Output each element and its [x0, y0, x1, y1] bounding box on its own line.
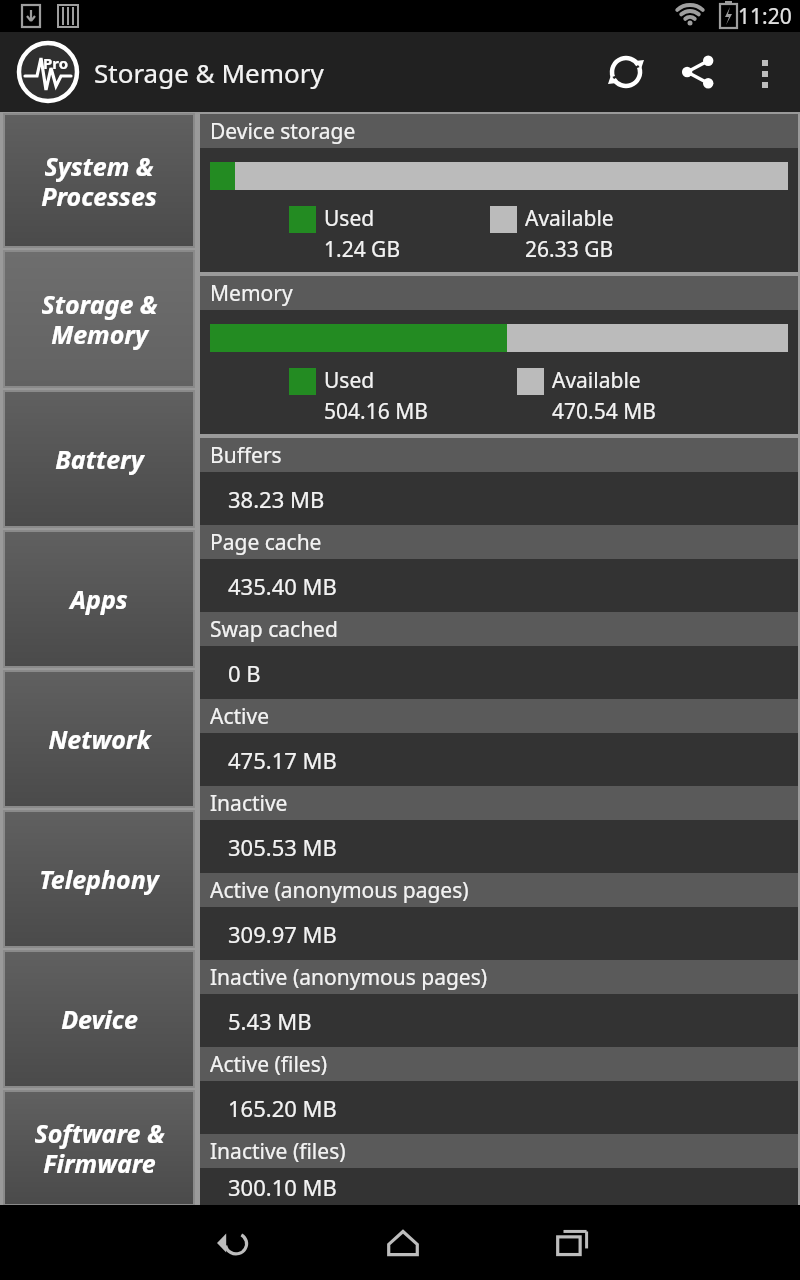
staticText: Device storage [210, 117, 356, 146]
staticText: Active [210, 702, 270, 731]
button[interactable]: Inactive [200, 786, 798, 820]
staticText: 300.10 MB [228, 1172, 337, 1202]
staticText: 435.40 MB [228, 571, 337, 601]
button[interactable]: Device storage [200, 114, 798, 272]
staticText: Used [324, 366, 375, 395]
staticText: Storage & Memory [41, 287, 158, 351]
staticText: 0 B [228, 658, 261, 688]
button[interactable]: Share [662, 36, 734, 108]
staticText: Available [552, 366, 641, 395]
staticText: Active (anonymous pages) [210, 876, 469, 905]
staticText: Buffers [210, 441, 282, 470]
button[interactable]: Home [366, 1206, 440, 1280]
button[interactable]: 309.97 MB [200, 907, 798, 960]
staticText: Swap cached [210, 615, 338, 644]
button[interactable]: 0 B [200, 646, 798, 699]
staticText: Pro [43, 53, 69, 73]
staticText: Inactive (anonymous pages) [210, 963, 488, 992]
button[interactable]: Battery [4, 391, 194, 527]
staticText: Software & Firmware [34, 1116, 165, 1180]
staticText: 470.54 MB [552, 397, 656, 426]
button[interactable]: 38.23 MB [200, 472, 798, 525]
button[interactable]: System & Processes [4, 114, 194, 247]
button[interactable]: Active (anonymous pages) [200, 873, 798, 907]
staticText: Active (files) [210, 1050, 328, 1079]
button[interactable]: 300.10 MB [200, 1168, 798, 1205]
staticText: Inactive (files) [210, 1137, 346, 1166]
staticText: Device [61, 1002, 138, 1036]
button[interactable]: 305.53 MB [200, 820, 798, 873]
staticText: 165.20 MB [228, 1093, 337, 1123]
button[interactable]: Storage & Memory [4, 251, 194, 387]
staticText: Memory [210, 279, 293, 308]
staticText: Network [48, 722, 151, 756]
button[interactable]: Active [200, 699, 798, 733]
button[interactable]: 165.20 MB [200, 1081, 798, 1134]
staticText: Page cache [210, 528, 322, 557]
staticText: 1.24 GB [324, 235, 401, 264]
staticText: Used [324, 204, 375, 233]
staticText: 305.53 MB [228, 832, 337, 862]
button[interactable]: Swap cached [200, 612, 798, 646]
button[interactable]: Back [196, 1206, 270, 1280]
button[interactable]: Buffers [200, 438, 798, 472]
button[interactable]: 5.43 MB [200, 994, 798, 1047]
button[interactable]: Memory [200, 276, 798, 434]
staticText: 5.43 MB [228, 1006, 312, 1036]
staticText: Available [525, 204, 614, 233]
staticText: 38.23 MB [228, 484, 325, 514]
staticText: 475.17 MB [228, 745, 337, 775]
button[interactable]: Apps [4, 531, 194, 667]
staticText: Battery [55, 442, 144, 476]
staticText: Inactive [210, 789, 288, 818]
staticText: Telephony [39, 862, 159, 896]
button[interactable]: Page cache [200, 525, 798, 559]
button[interactable]: Refresh [590, 36, 662, 108]
staticText: 504.16 MB [324, 397, 428, 426]
staticText: System & Processes [41, 149, 157, 213]
button[interactable]: Telephony [4, 811, 194, 947]
button[interactable]: 435.40 MB [200, 559, 798, 612]
staticText: Storage & Memory [94, 55, 324, 90]
staticText: 26.33 GB [525, 235, 614, 264]
button[interactable]: Active (files) [200, 1047, 798, 1081]
button[interactable]: App logo [16, 40, 80, 104]
button[interactable]: Recent apps [536, 1206, 610, 1280]
button[interactable]: Inactive (anonymous pages) [200, 960, 798, 994]
staticText: Apps [70, 582, 128, 616]
button[interactable]: Inactive (files) [200, 1134, 798, 1168]
button[interactable]: Software & Firmware [4, 1091, 194, 1205]
staticText: 11:20 [738, 2, 792, 31]
button[interactable]: Network [4, 671, 194, 807]
button[interactable]: Device [4, 951, 194, 1087]
button[interactable]: 475.17 MB [200, 733, 798, 786]
button[interactable]: More options [734, 41, 796, 103]
staticText: 309.97 MB [228, 919, 337, 949]
